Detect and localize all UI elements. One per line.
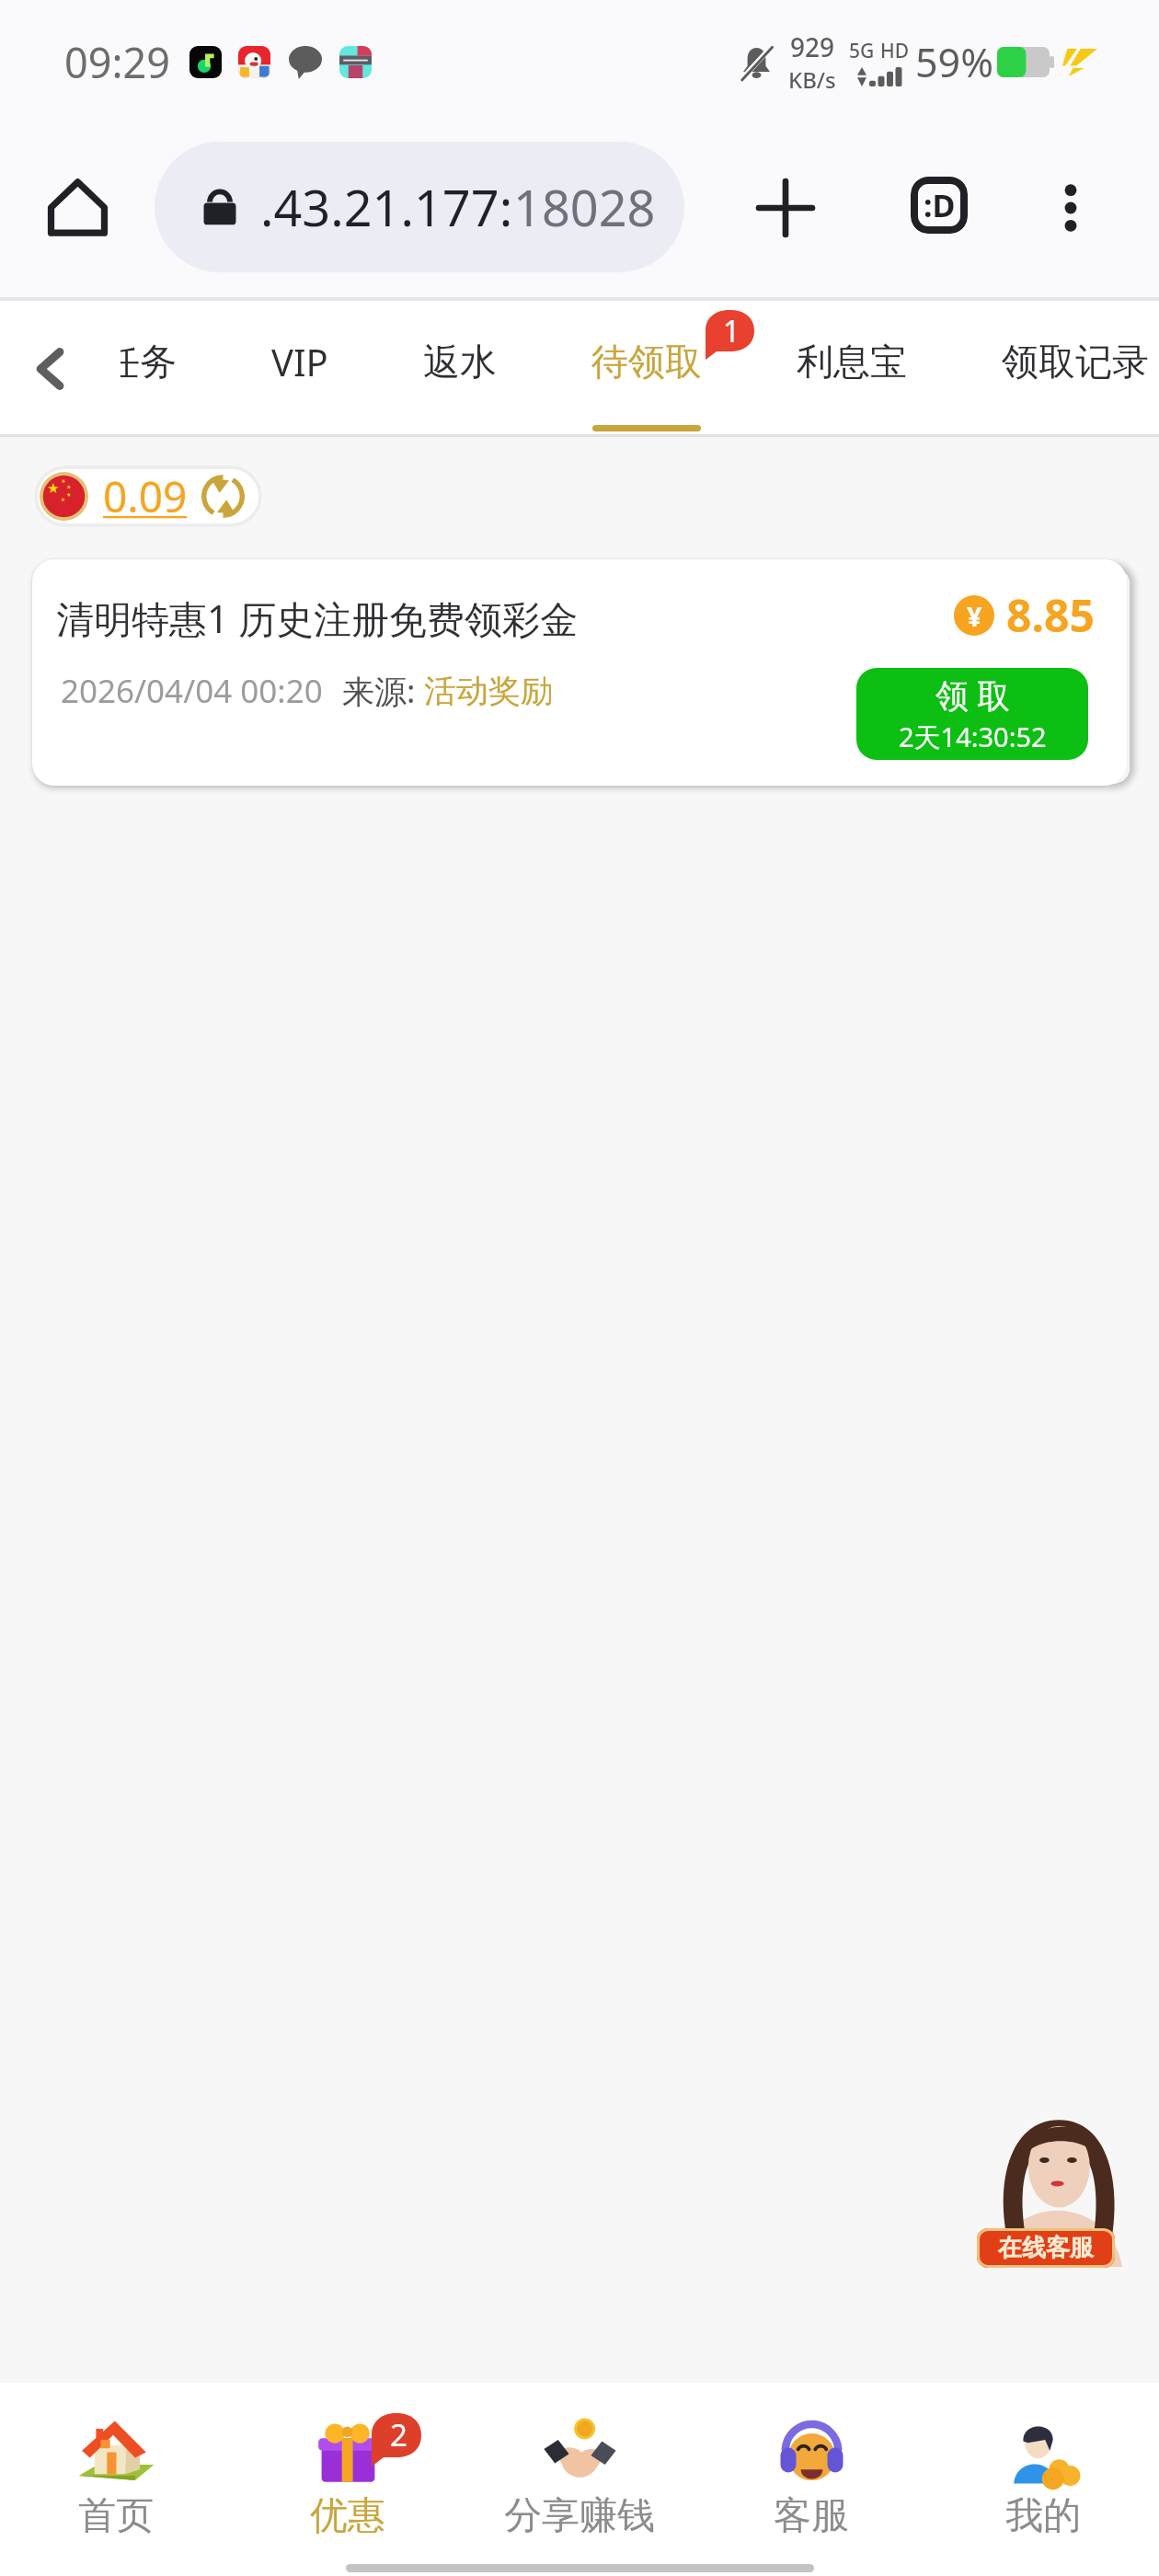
staticText: 待领取 bbox=[591, 339, 702, 385]
staticText: .43.21.177: bbox=[260, 173, 513, 241]
button[interactable]: 分享赚钱 bbox=[464, 2398, 695, 2554]
staticText: 8.85 bbox=[1006, 585, 1095, 645]
staticText: 利息宝 bbox=[797, 339, 907, 385]
button[interactable]: 我的 bbox=[927, 2398, 1159, 2554]
staticText: 分享赚钱 bbox=[504, 2492, 655, 2540]
button[interactable]: Online customer service bbox=[973, 2110, 1135, 2267]
staticText: 清明特惠1 历史注册免费领彩金 bbox=[56, 592, 579, 644]
button[interactable]: 利息宝 bbox=[797, 301, 907, 437]
staticText: 59% bbox=[915, 35, 993, 89]
button[interactable]: VIP bbox=[271, 301, 328, 437]
staticText: 活动奖励 bbox=[424, 671, 553, 711]
staticText: 2天14:30:52 bbox=[899, 719, 1047, 755]
button[interactable]: 客服 bbox=[695, 2398, 927, 2554]
staticText: KB/s bbox=[788, 64, 836, 95]
staticText: 我的 bbox=[1005, 2492, 1081, 2540]
staticText: 任务 bbox=[103, 339, 177, 385]
staticText: 在线客服 bbox=[998, 2233, 1094, 2263]
button[interactable]: More options bbox=[1031, 168, 1109, 247]
staticText: HD bbox=[880, 38, 910, 64]
staticText: 客服 bbox=[774, 2492, 849, 2540]
button[interactable]: Tabs bbox=[900, 168, 978, 247]
staticText: 返水 bbox=[423, 339, 497, 385]
button[interactable]: 任务 bbox=[103, 301, 177, 437]
button[interactable]: 返水 bbox=[423, 301, 497, 437]
button[interactable]: New tab bbox=[746, 168, 824, 247]
staticText: 首页 bbox=[78, 2492, 154, 2540]
staticText: 2026/04/04 00:20 bbox=[61, 669, 323, 713]
button[interactable]: 待领取 bbox=[591, 301, 702, 437]
button[interactable]: 领取记录 bbox=[1002, 301, 1149, 437]
button[interactable]: 领 取 bbox=[856, 668, 1088, 760]
staticText: 09:29 bbox=[64, 34, 171, 90]
staticText: 5G bbox=[849, 38, 875, 64]
button[interactable]: Home bbox=[39, 168, 117, 247]
staticText: 优惠 bbox=[310, 2492, 385, 2540]
button[interactable]: 首页 bbox=[0, 2398, 232, 2554]
button[interactable]: 优惠 bbox=[232, 2398, 464, 2554]
staticText: 0.09 bbox=[103, 467, 188, 525]
button[interactable]: Back bbox=[17, 336, 83, 402]
staticText: 领 取 bbox=[935, 673, 1011, 718]
staticText: 1 bbox=[723, 311, 740, 351]
staticText: :D bbox=[924, 184, 956, 226]
button[interactable]: .43.21.177: bbox=[155, 142, 684, 272]
staticText: 2 bbox=[390, 2414, 407, 2455]
staticText: 18028 bbox=[513, 173, 656, 241]
staticText: VIP bbox=[271, 337, 328, 386]
staticText: ¥ bbox=[967, 598, 982, 634]
staticText: 来源: bbox=[342, 669, 424, 713]
button[interactable]: 0.09 bbox=[34, 466, 262, 527]
staticText: 929 bbox=[790, 29, 835, 64]
staticText: 领取记录 bbox=[1002, 339, 1149, 385]
